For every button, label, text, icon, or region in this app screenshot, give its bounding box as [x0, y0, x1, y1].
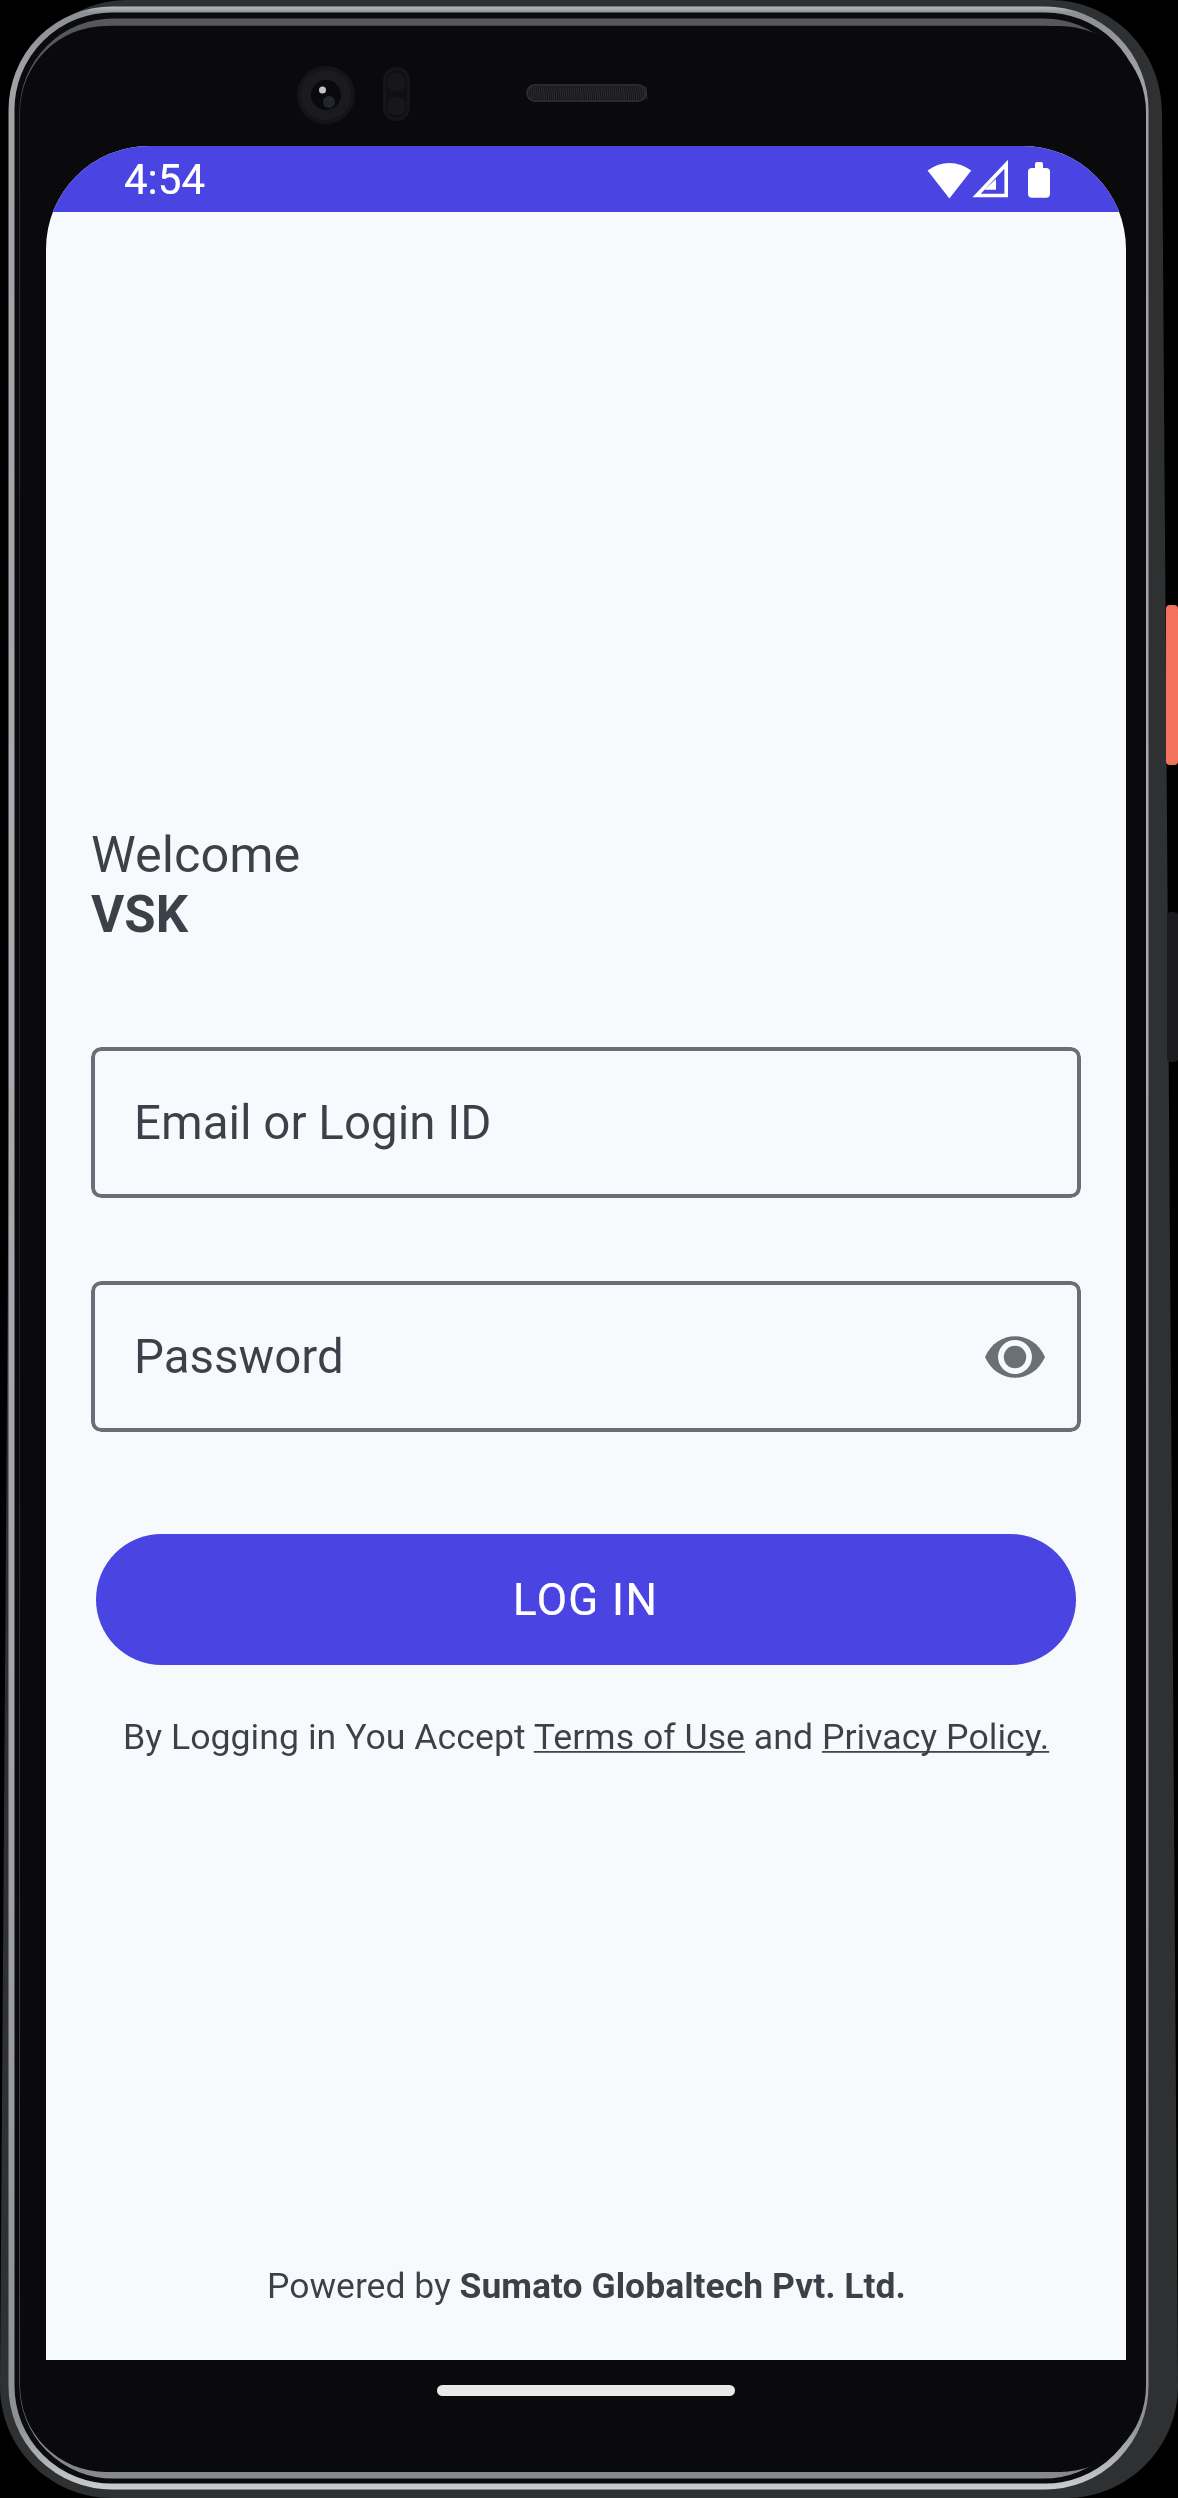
staticText: Powered by Sumato Globaltech Pvt. Ltd. — [267, 2265, 906, 2307]
staticText: 4:54 — [124, 155, 205, 204]
staticText: Password — [134, 1329, 344, 1385]
staticText: LOG IN — [513, 1574, 659, 1626]
staticText: Welcome — [91, 825, 301, 884]
button[interactable]: Email or Login ID — [91, 1047, 1081, 1198]
button[interactable]: By Logging in You Accept Terms of Use an… — [123, 1716, 1050, 1758]
button[interactable]: LOG IN — [96, 1534, 1076, 1665]
button[interactable]: Show password — [969, 1311, 1061, 1403]
button[interactable]: Password — [91, 1281, 1081, 1432]
staticText: Email or Login ID — [134, 1095, 492, 1151]
staticText: VSK — [91, 885, 189, 945]
